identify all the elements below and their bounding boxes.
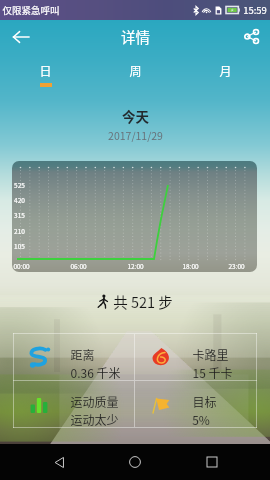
staticText: 运动太少	[70, 411, 119, 428]
staticText: 00:00	[13, 261, 30, 270]
staticText: 详情	[121, 26, 150, 47]
staticText: 目标	[192, 393, 217, 410]
staticText: 日	[39, 62, 52, 79]
staticText: 5%	[192, 411, 210, 428]
button[interactable]: 距离	[13, 334, 134, 380]
staticText: 0.36 千米	[70, 364, 121, 381]
staticText: 06:00	[70, 261, 87, 270]
staticText: 月	[219, 62, 232, 79]
button[interactable]: 卡路里	[135, 334, 257, 380]
staticText: 15 千卡	[192, 364, 233, 381]
button[interactable]: Share	[232, 20, 270, 53]
staticText: 仅限紧急呼叫	[2, 3, 60, 17]
staticText: 15:59	[243, 3, 267, 17]
staticText: 525	[14, 180, 25, 189]
staticText: 今天	[122, 106, 149, 126]
staticText: 315	[14, 210, 25, 219]
button[interactable]: 月	[180, 56, 270, 92]
staticText: 卡路里	[192, 346, 229, 363]
button[interactable]: Back	[41, 444, 77, 480]
staticText: 420	[14, 195, 25, 204]
button[interactable]: 周	[90, 56, 180, 92]
button[interactable]: Recents	[194, 444, 230, 480]
staticText: 距离	[70, 346, 95, 363]
staticText: 105	[14, 241, 25, 250]
button[interactable]: 目标	[135, 381, 257, 427]
staticText: 运动质量	[70, 393, 119, 410]
button[interactable]: 日	[0, 56, 90, 92]
staticText: 2017/11/29	[108, 128, 163, 143]
staticText: 18:00	[182, 261, 199, 270]
staticText: 210	[14, 226, 25, 235]
button[interactable]: 运动质量	[13, 381, 134, 427]
staticText: 23:00	[228, 261, 245, 270]
button[interactable]: Back	[0, 20, 42, 53]
button[interactable]: Home	[117, 444, 153, 480]
staticText: 12:00	[127, 261, 144, 270]
staticText: 共 521 步	[113, 291, 173, 312]
staticText: 周	[129, 62, 142, 79]
